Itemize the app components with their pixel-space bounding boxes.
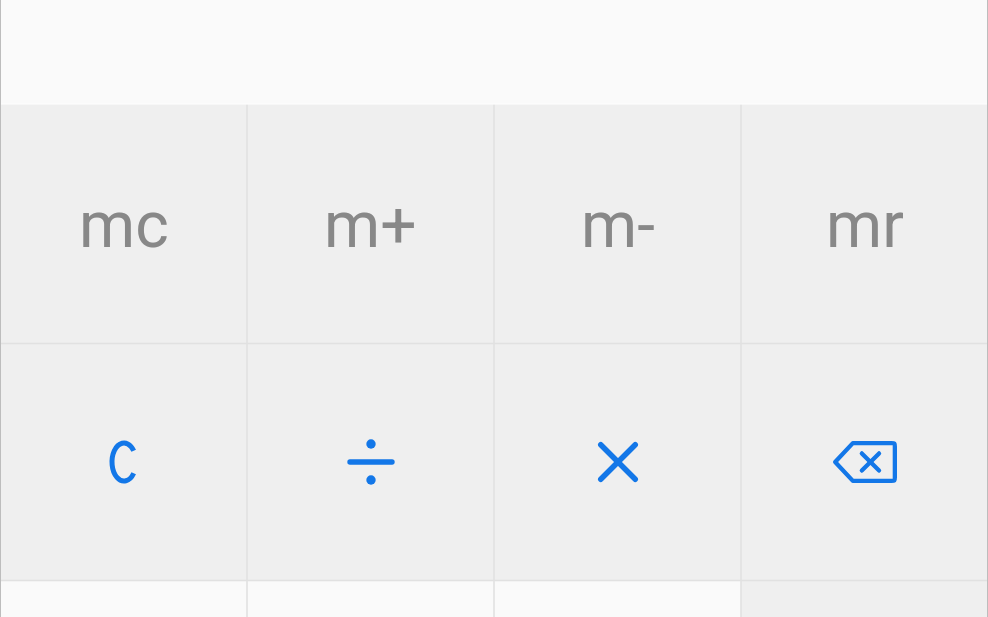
button[interactable]: mr <box>741 104 988 344</box>
button[interactable]: mc <box>0 104 247 344</box>
button[interactable]: Divide <box>247 344 494 581</box>
staticText: mc <box>79 188 169 263</box>
button[interactable] <box>0 581 247 617</box>
staticText: mr <box>826 188 904 263</box>
button[interactable]: Backspace <box>741 344 988 581</box>
button[interactable]: m+ <box>247 104 494 344</box>
button[interactable]: Clear <box>0 344 247 581</box>
button[interactable]: Multiply <box>494 344 741 581</box>
button[interactable]: m- <box>494 104 741 344</box>
staticText: m- <box>581 188 655 263</box>
staticText: m+ <box>324 188 417 263</box>
button[interactable] <box>741 581 988 617</box>
